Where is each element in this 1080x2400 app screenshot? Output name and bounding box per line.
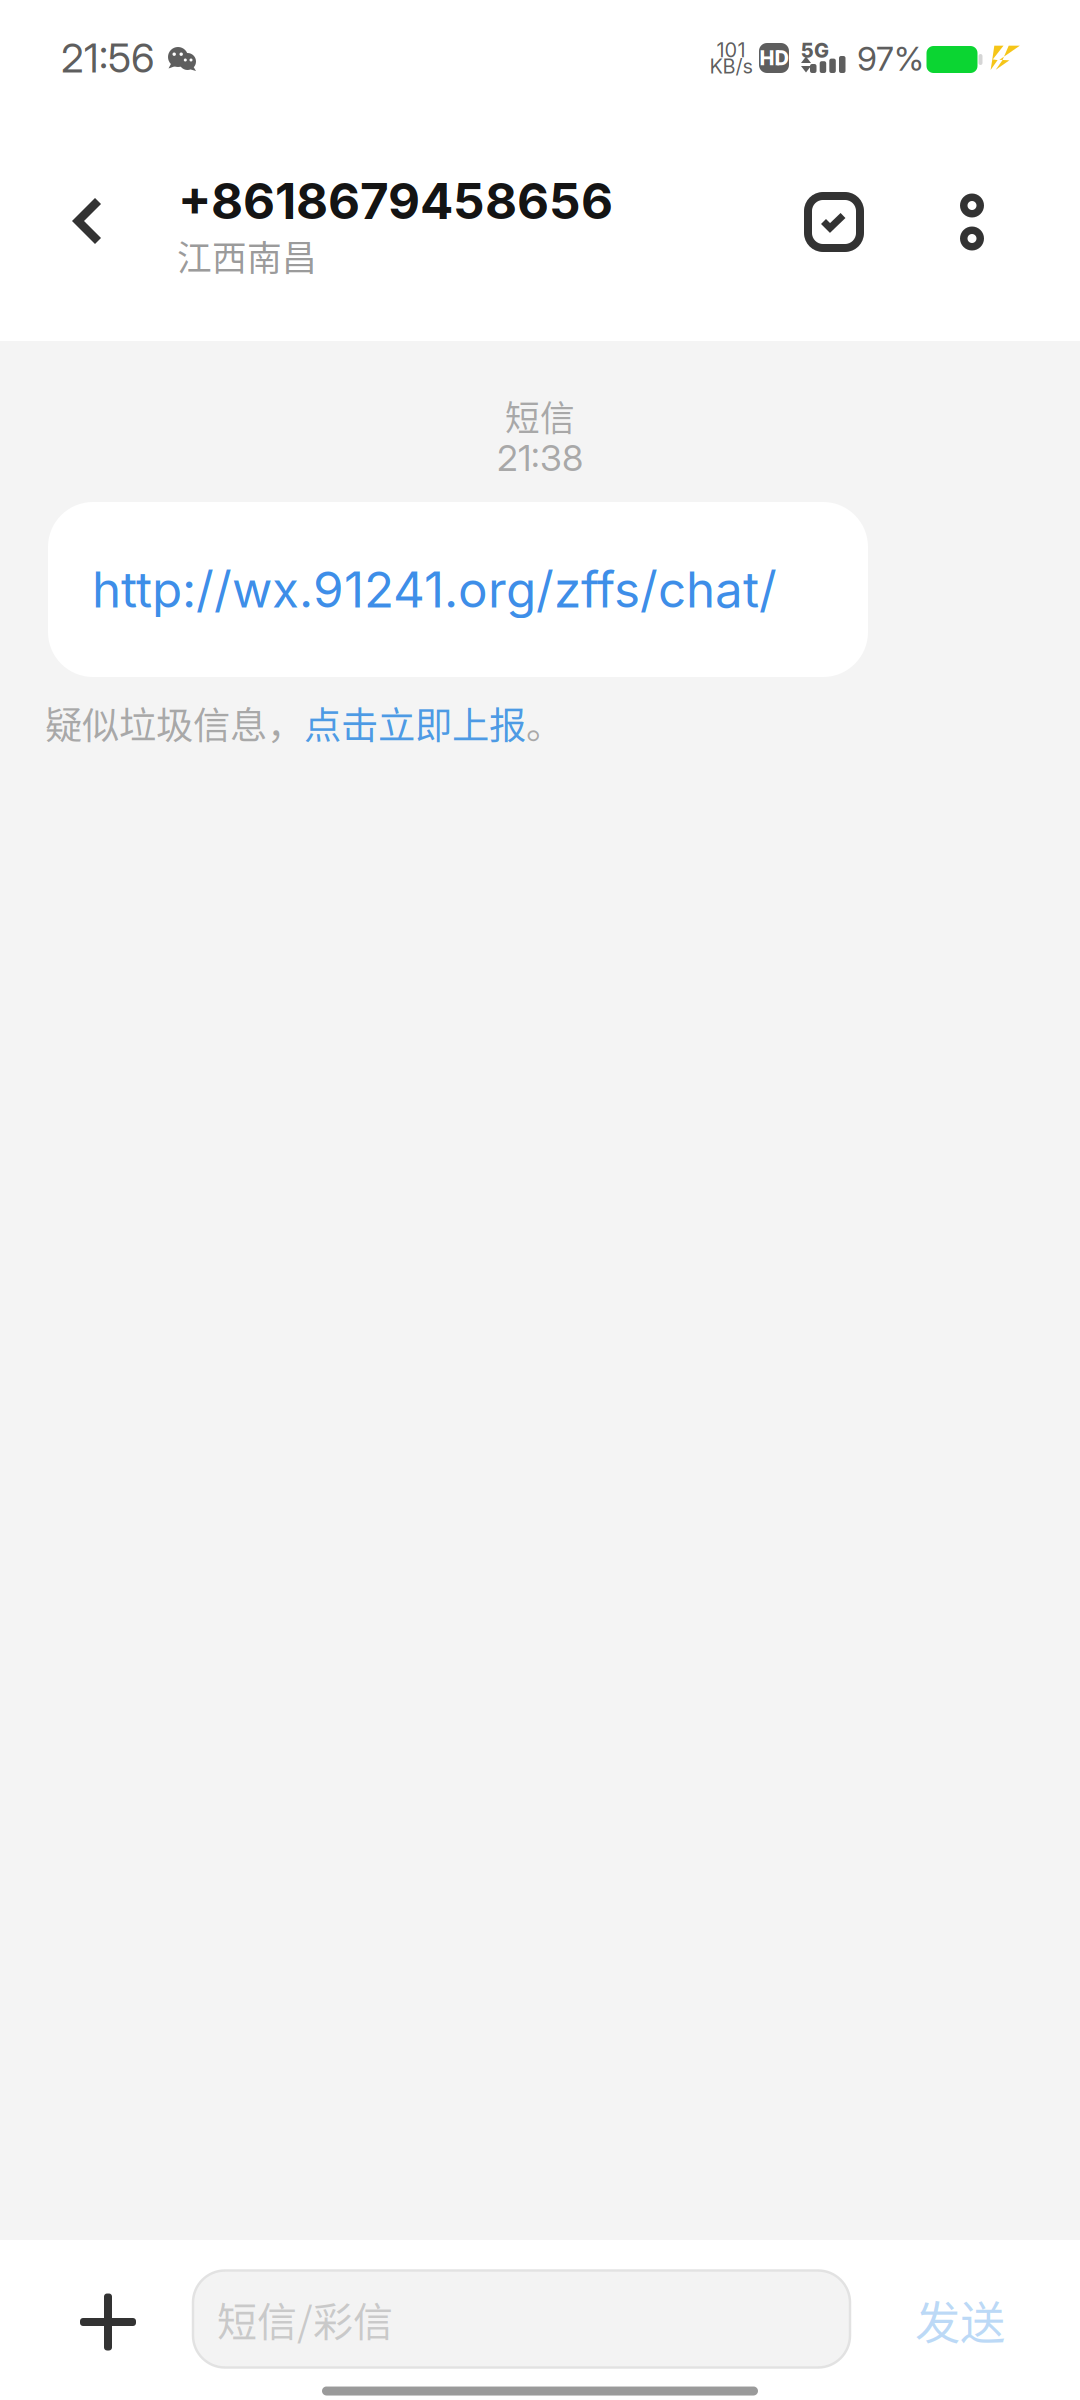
staticText: KB/s bbox=[709, 54, 752, 78]
staticText: 短信/彩信 bbox=[217, 2290, 393, 2348]
staticText: 97% bbox=[857, 38, 924, 79]
button[interactable]: 点击立即上报 bbox=[304, 696, 526, 750]
staticText: http://wx.91241.org/zffs/chat/ bbox=[92, 560, 777, 619]
staticText: 101 bbox=[716, 38, 745, 62]
staticText: 疑似垃圾信息， bbox=[45, 696, 304, 750]
staticText: 江西南昌 bbox=[177, 231, 317, 281]
button[interactable]: Select messages bbox=[779, 162, 889, 282]
button[interactable]: http://wx.91241.org/zffs/chat/ bbox=[48, 502, 868, 677]
staticText: 21:56 bbox=[61, 34, 155, 82]
button[interactable]: Back bbox=[33, 161, 143, 281]
staticText: 21:38 bbox=[497, 436, 583, 480]
staticText: 。 bbox=[526, 696, 563, 750]
staticText: 点击立即上报 bbox=[304, 696, 526, 750]
staticText: 短信 bbox=[505, 391, 575, 441]
staticText: 发送 bbox=[915, 2287, 1005, 2353]
staticText: +8618679458656 bbox=[178, 171, 613, 231]
staticText: HD bbox=[759, 46, 788, 70]
button[interactable]: Add attachment bbox=[48, 2262, 168, 2382]
button[interactable]: More options bbox=[924, 162, 1020, 282]
button[interactable]: 发送 bbox=[890, 2265, 1030, 2375]
staticText: 5G bbox=[801, 38, 829, 63]
button[interactable]: 短信/彩信 bbox=[193, 2270, 850, 2367]
